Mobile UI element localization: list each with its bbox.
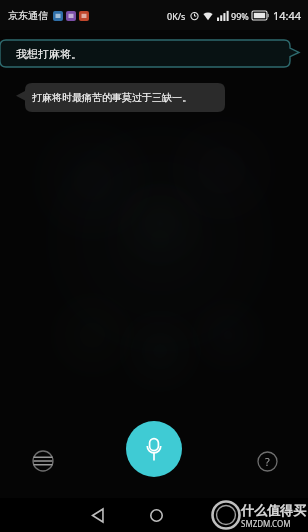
button[interactable]: Help <box>250 444 284 478</box>
button[interactable]: Home <box>141 500 171 530</box>
button[interactable]: 我想打麻将。 <box>0 40 299 67</box>
staticText: SMZDM.COM <box>241 518 291 529</box>
button[interactable]: Back <box>82 500 112 530</box>
staticText: 京东通信 <box>8 9 48 22</box>
staticText: 打麻将时最痛苦的事莫过于三缺一。 <box>32 91 192 104</box>
staticText: 99% <box>231 10 249 22</box>
staticText: 我想打麻将。 <box>16 47 82 61</box>
staticText: 什么值得买 <box>241 502 306 518</box>
staticText: 0K/s <box>167 10 186 22</box>
button[interactable]: 打麻将时最痛苦的事莫过于三缺一。 <box>16 83 225 112</box>
staticText: ? <box>265 454 270 469</box>
button[interactable]: Menu <box>26 444 60 478</box>
staticText: 14:44 <box>273 8 302 23</box>
button[interactable]: Voice input <box>126 421 182 477</box>
